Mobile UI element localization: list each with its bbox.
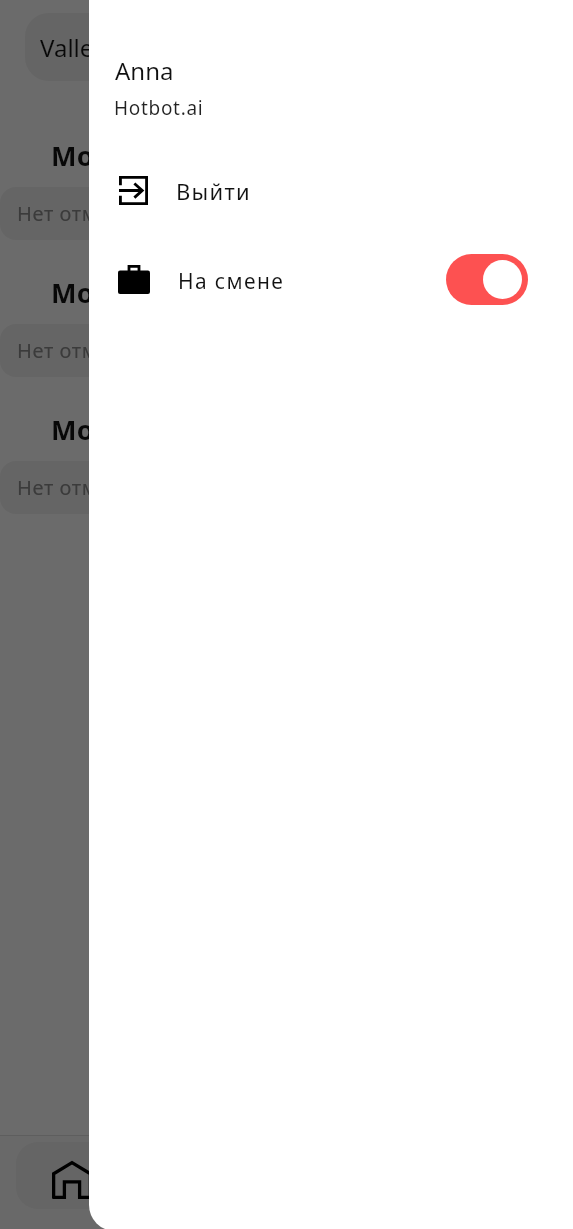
- button[interactable]: На смене: [89, 252, 573, 310]
- staticText: Hotbot.ai: [114, 95, 204, 121]
- button[interactable]: Нет отметок: [0, 324, 573, 377]
- button[interactable]: Valley Stream: [25, 13, 208, 81]
- staticText: Выйти: [176, 176, 252, 206]
- staticText: Нет отметок: [17, 474, 143, 501]
- staticText: Anna: [115, 54, 174, 87]
- button[interactable]: Home: [16, 1142, 128, 1209]
- staticText: На смене: [178, 267, 285, 296]
- staticText: Monday, 30 Sep: [51, 411, 264, 448]
- staticText: Valley Stream: [40, 31, 193, 64]
- button[interactable]: Close drawer: [0, 0, 573, 1229]
- button[interactable]: On shift, enabled: [446, 254, 528, 305]
- staticText: Monday, 7 Oct: [51, 274, 247, 311]
- staticText: Нет отметок: [17, 337, 143, 364]
- button[interactable]: Нет отметок: [0, 461, 573, 514]
- staticText: Monday, 14 Oct: [51, 137, 263, 174]
- button[interactable]: Выйти: [89, 167, 573, 213]
- staticText: Нет отметок: [17, 200, 143, 227]
- button[interactable]: Нет отметок: [0, 187, 573, 240]
